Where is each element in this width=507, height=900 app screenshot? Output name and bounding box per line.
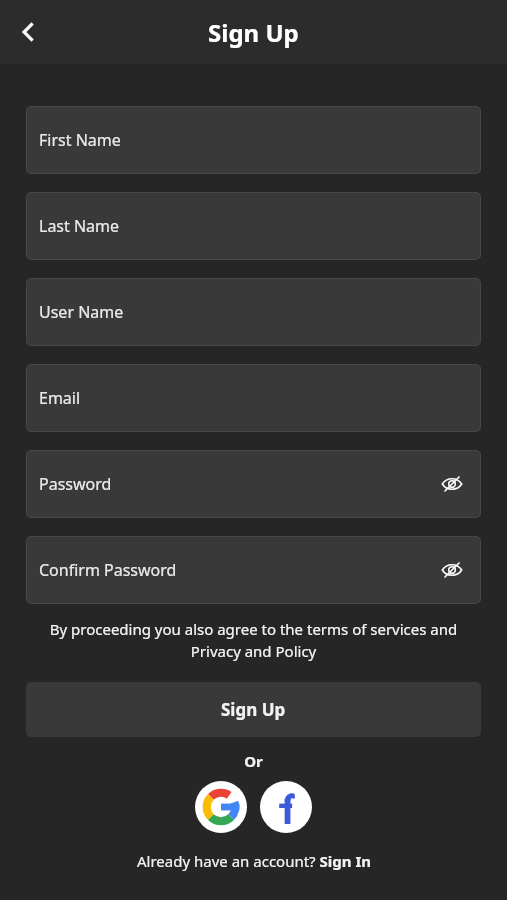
staticText: Last Name [39, 215, 468, 237]
button[interactable]: Sign Up [26, 682, 481, 737]
staticText: Already have an account? Sign In [137, 851, 371, 871]
button[interactable]: Sign up with Google [195, 781, 247, 833]
staticText: Or [0, 751, 507, 771]
staticText: Confirm Password [39, 559, 436, 581]
button[interactable]: Email [26, 364, 481, 432]
staticText: Sign Up [208, 16, 299, 49]
button[interactable]: Show password [436, 554, 468, 586]
staticText: Password [39, 473, 436, 495]
button[interactable]: Confirm Password [26, 536, 481, 604]
button[interactable]: Sign up with Facebook [260, 781, 312, 833]
button[interactable]: Show password [436, 468, 468, 500]
staticText: Email [39, 387, 468, 409]
button[interactable]: Already have an account? Sign In [0, 851, 507, 871]
staticText: By proceeding you also agree to the term… [28, 619, 479, 662]
button[interactable]: Last Name [26, 192, 481, 260]
button[interactable]: User Name [26, 278, 481, 346]
staticText: User Name [39, 301, 468, 323]
button[interactable]: Back [8, 12, 48, 52]
button[interactable]: First Name [26, 106, 481, 174]
staticText: First Name [39, 129, 468, 151]
staticText: Sign Up [221, 698, 286, 721]
button[interactable]: Password [26, 450, 481, 518]
